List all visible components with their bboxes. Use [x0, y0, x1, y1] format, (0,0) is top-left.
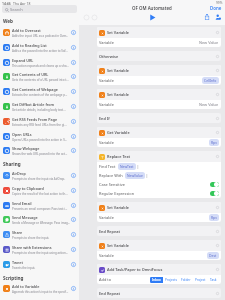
button[interactable]: Set Variable [97, 89, 221, 109]
button[interactable]: Set Variable [97, 202, 221, 222]
button[interactable]: Inbox [152, 278, 161, 282]
staticText: Variable [99, 215, 209, 220]
staticText: Set Variable [107, 205, 216, 210]
other: Info [216, 131, 219, 134]
staticText: End Repeat [99, 291, 216, 296]
staticText: Adds a the passed into the action to Saf… [12, 49, 68, 53]
button[interactable]: NewText [120, 164, 134, 169]
staticText: CellInfo [204, 78, 217, 83]
staticText: Set Variable [107, 243, 216, 248]
staticText: OF OM Automated [132, 5, 172, 11]
staticText: Rpv [211, 140, 217, 145]
button[interactable]: Task [210, 278, 217, 282]
button[interactable]: Send Email [0, 198, 79, 213]
button[interactable]: Variable [97, 38, 221, 47]
button[interactable]: AirDrop [0, 168, 79, 183]
button[interactable]: Dest [209, 253, 217, 258]
button[interactable]: Set Variable [97, 240, 221, 260]
button[interactable]: Send Message [0, 212, 79, 227]
button[interactable]: Set Variable [97, 65, 221, 85]
staticText: Prompts to share the input. [12, 236, 50, 240]
staticText: Add to Overcast [12, 28, 41, 33]
button[interactable]: Replace With [97, 171, 221, 180]
other: Info [71, 286, 76, 291]
button[interactable]: Search [2, 5, 77, 13]
button[interactable]: Set Variable [97, 27, 221, 47]
button[interactable]: Case Sensitive [97, 180, 221, 189]
staticText: Set Variable [107, 68, 216, 73]
button[interactable]: Project [195, 278, 206, 282]
staticText: Variable [99, 253, 207, 258]
button[interactable]: NewValue [127, 173, 143, 178]
button[interactable]: Projects [165, 278, 177, 282]
staticText: End If [99, 116, 216, 121]
staticText: Add to [99, 277, 112, 282]
other: Info [216, 55, 219, 58]
button[interactable]: Add to Variable [0, 281, 79, 296]
button[interactable]: Add Task/Paper to OmniFocus [97, 264, 221, 284]
button[interactable]: Get Diffbot Article from Webpage [0, 99, 79, 114]
other: Info [71, 203, 76, 208]
button[interactable]: Show Webpage [0, 143, 79, 158]
button[interactable]: Replace Text [97, 151, 221, 198]
button[interactable]: Add to Overcast [0, 25, 79, 40]
staticText: Replace With [99, 173, 123, 178]
button[interactable]: Variable [97, 138, 221, 147]
button[interactable]: Get Contents of Webpage [0, 84, 79, 99]
button[interactable]: End If [97, 113, 221, 123]
button[interactable]: Add to Reading List [0, 40, 79, 55]
staticText: Presents an email composer. Pass text i… [12, 207, 68, 211]
button[interactable]: Folder [181, 278, 191, 282]
staticText: Sharing [3, 161, 21, 167]
staticText: Variable [99, 78, 202, 83]
staticText: Open URLs [12, 132, 32, 137]
button[interactable]: Get Variable [97, 127, 221, 147]
other: Info [71, 89, 76, 94]
button[interactable]: Regular Expression [97, 189, 221, 198]
button[interactable]: Open URLs [0, 129, 79, 144]
staticText: Send Email [12, 201, 32, 206]
staticText: Folder [181, 278, 191, 282]
staticText: Web [3, 18, 13, 24]
button[interactable]: End Repeat [97, 288, 221, 298]
button[interactable]: Done [210, 5, 222, 11]
button[interactable]: Variable [97, 76, 221, 85]
staticText: Done [210, 5, 222, 11]
button[interactable]: Expand URL [0, 55, 79, 70]
button[interactable]: Copy to Clipboard [0, 183, 79, 198]
staticText: NewText [120, 164, 134, 169]
button[interactable]: Rpv [211, 215, 217, 220]
button[interactable]: End Repeat [97, 226, 221, 236]
button[interactable]: Find Text [97, 162, 221, 171]
staticText: Get article details, including body text… [12, 108, 66, 112]
staticText: Share [12, 230, 23, 235]
button[interactable]: Share [0, 227, 79, 242]
button[interactable]: Run [149, 14, 156, 21]
other: Info [71, 134, 76, 139]
staticText: Add to Variable [12, 284, 40, 289]
staticText: AirDrop [12, 171, 26, 176]
button[interactable]: CellInfo [204, 78, 217, 83]
staticText: Case Sensitive [99, 182, 210, 187]
button[interactable]: Get Contents of URL [0, 69, 79, 84]
staticText: Thu Apr 18 [13, 1, 31, 5]
staticText: Rpv [211, 215, 217, 220]
button[interactable]: Get RSS Feeds From Page [0, 114, 79, 129]
other: Info [71, 232, 76, 237]
button[interactable]: Settings [215, 14, 221, 20]
button[interactable]: Share with Extensions [0, 242, 79, 257]
other: Info [216, 93, 219, 96]
other: Info [71, 262, 76, 267]
staticText: Extracts the contents of the webpage p… [12, 93, 68, 97]
button[interactable]: Variable [97, 213, 221, 222]
other: Info [71, 45, 76, 50]
button[interactable]: Otherwise [97, 51, 221, 61]
staticText: Send Message [12, 215, 38, 220]
button[interactable]: Variable [97, 251, 221, 260]
other: Info [216, 69, 219, 72]
button[interactable]: Share [204, 14, 210, 20]
staticText: Otherwise [99, 54, 216, 59]
button[interactable]: Tweet [0, 257, 79, 272]
button[interactable]: Rpv [211, 140, 217, 145]
button[interactable]: Variable [97, 100, 221, 109]
